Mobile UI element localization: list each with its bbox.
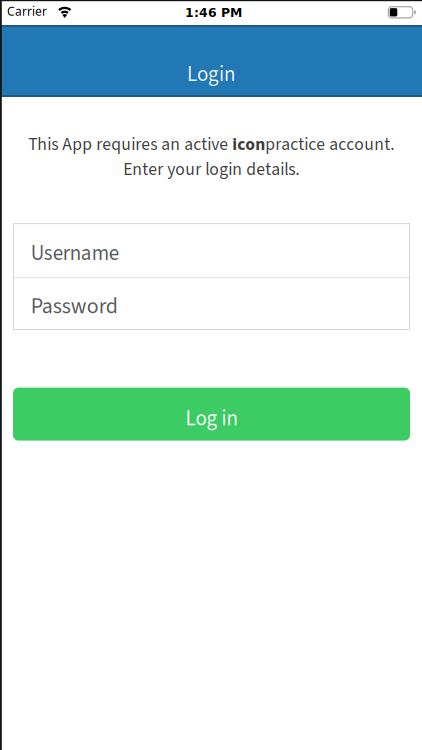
staticText: Login (187, 59, 235, 89)
button[interactable]: Log in (13, 388, 410, 441)
button[interactable]: Password (13, 277, 410, 330)
staticText: Carrier (7, 3, 47, 19)
staticText: 1:46 PM (185, 5, 242, 20)
staticText: Username (31, 238, 119, 268)
staticText: This App requires an active iconpractice… (28, 132, 394, 182)
staticText: Password (31, 291, 118, 322)
button[interactable]: Username (13, 223, 410, 277)
staticText: Log in (185, 404, 237, 434)
